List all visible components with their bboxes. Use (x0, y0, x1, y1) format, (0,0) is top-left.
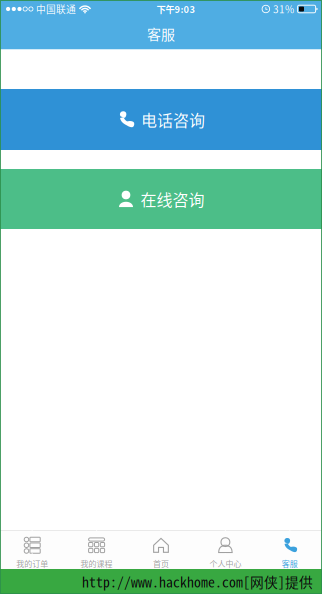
button[interactable]: 我的课程 (64, 531, 129, 569)
staticText: 31% (273, 2, 294, 16)
staticText: 我的课程 (81, 558, 113, 569)
staticText: 我的订单 (16, 558, 48, 569)
button[interactable]: 在线咨询 (0, 169, 322, 229)
staticText: 中国联通 (36, 2, 76, 16)
button[interactable]: 个人中心 (193, 531, 258, 569)
staticText: 电话咨询 (141, 108, 205, 131)
staticText: 客服 (282, 558, 298, 569)
staticText: 客服 (147, 24, 175, 44)
button[interactable]: 客服 (258, 531, 322, 569)
staticText: 个人中心 (209, 558, 241, 569)
staticText: http://www.hackhome.com[网侠]提供 (82, 572, 313, 591)
button[interactable]: 我的订单 (0, 531, 64, 569)
staticText: 下午9:03 (157, 2, 196, 16)
staticText: 首页 (153, 558, 169, 569)
button[interactable]: 首页 (129, 531, 193, 569)
staticText: 在线咨询 (140, 187, 204, 211)
button[interactable]: 电话咨询 (0, 89, 322, 150)
